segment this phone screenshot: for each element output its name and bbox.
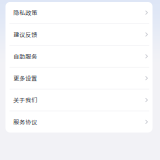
staticText: 建议反馈 bbox=[13, 30, 37, 39]
staticText: 关于我们 bbox=[13, 96, 37, 104]
button[interactable]: 关于我们 bbox=[5, 89, 152, 111]
button[interactable]: 自助服务 bbox=[5, 46, 152, 67]
staticText: 服务协议 bbox=[13, 118, 37, 126]
button[interactable]: 建议反馈 bbox=[5, 24, 152, 45]
button[interactable]: 隐私政策 bbox=[5, 2, 152, 23]
button[interactable]: 服务协议 bbox=[5, 111, 152, 132]
staticText: 隐私政策 bbox=[13, 8, 37, 17]
staticText: 更多设置 bbox=[13, 74, 37, 82]
button[interactable]: 更多设置 bbox=[5, 67, 152, 89]
staticText: 自助服务 bbox=[13, 52, 37, 61]
